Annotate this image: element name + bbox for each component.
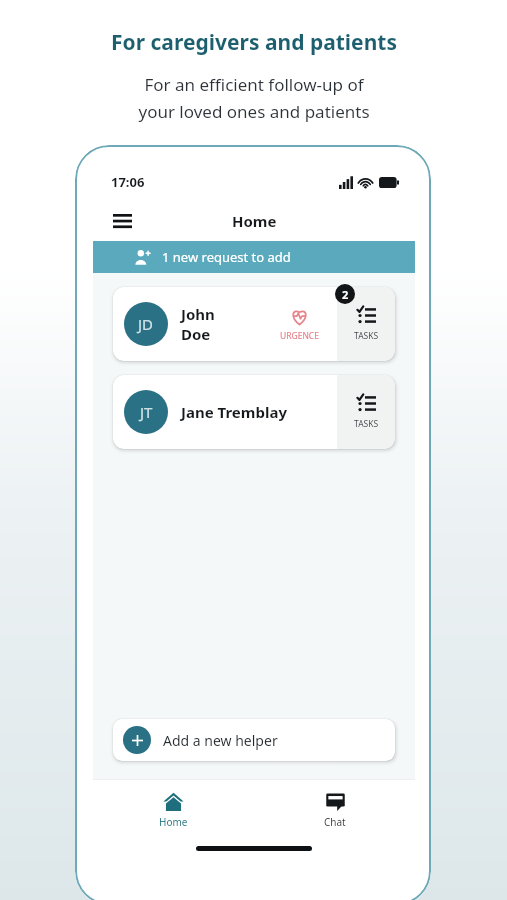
staticText: 1 new request to add	[162, 248, 291, 266]
button[interactable]: Open menu	[105, 204, 139, 238]
staticText: JD	[138, 314, 154, 334]
staticText: URGENCE	[280, 330, 319, 342]
button[interactable]: TASKS	[337, 287, 395, 361]
button[interactable]: JT	[113, 375, 395, 449]
staticText: TASKS	[354, 330, 379, 342]
staticText: For an efficient follow-up of	[144, 73, 364, 96]
staticText: JT	[140, 402, 153, 422]
button[interactable]: Chat	[306, 789, 364, 831]
button[interactable]: Home	[141, 789, 206, 831]
staticText: your loved ones and patients	[138, 100, 370, 123]
staticText: Doe	[181, 324, 211, 344]
staticText: Add a new helper	[163, 731, 278, 750]
button[interactable]: TASKS	[337, 375, 395, 449]
button[interactable]: 1 new request to add	[93, 241, 415, 273]
staticText: 2	[342, 287, 349, 302]
staticText: Chat	[324, 815, 346, 829]
staticText: John	[181, 304, 215, 324]
staticText: Home	[159, 815, 188, 829]
staticText: For caregivers and patients	[111, 28, 397, 57]
staticText: Jane Tremblay	[181, 402, 287, 422]
button[interactable]: JD	[113, 287, 395, 361]
button[interactable]: URGENCE	[272, 307, 327, 342]
staticText: TASKS	[354, 418, 379, 430]
staticText: 17:06	[111, 173, 145, 191]
staticText: Home	[232, 211, 277, 231]
button[interactable]: Add a new helper	[113, 719, 395, 761]
